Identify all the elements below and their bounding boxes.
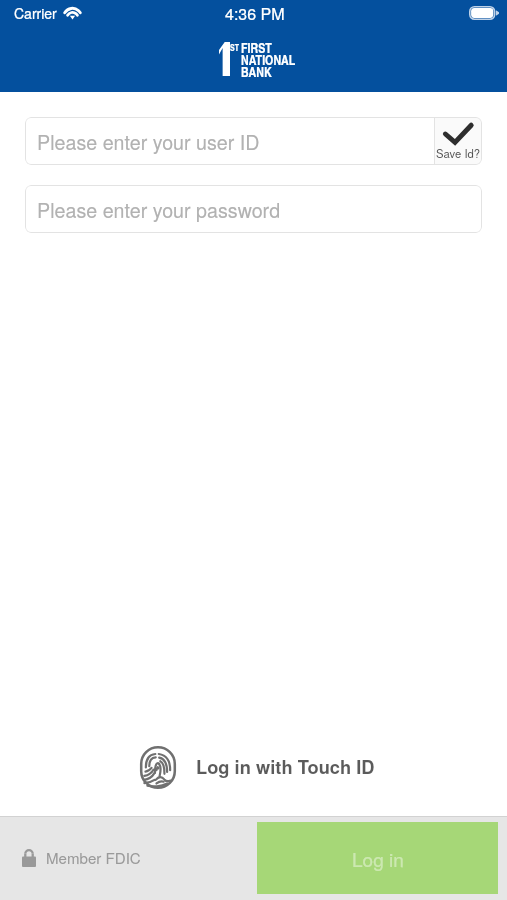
button[interactable]: Log in xyxy=(257,822,498,894)
staticText: Save Id? xyxy=(436,145,481,161)
staticText: Member FDIC xyxy=(46,847,141,869)
button[interactable]: Please enter your user ID xyxy=(25,117,482,165)
button[interactable]: Please enter your password xyxy=(25,185,482,233)
staticText: BANK xyxy=(241,63,272,81)
staticText: NATIONAL xyxy=(241,51,296,69)
staticText: Please enter your password xyxy=(37,195,281,223)
staticText: Log in with Touch ID xyxy=(196,753,375,779)
staticText: 4:36 PM xyxy=(225,2,285,25)
staticText: Please enter your user ID xyxy=(37,127,260,155)
button[interactable]: Save Id xyxy=(434,117,482,165)
button[interactable]: Log in with Touch ID xyxy=(129,739,385,796)
staticText: FIRST xyxy=(241,39,272,57)
button[interactable]: Member FDIC xyxy=(22,847,141,869)
staticText: ST xyxy=(230,42,239,54)
staticText: Log in xyxy=(352,845,404,872)
staticText: Carrier xyxy=(14,3,57,23)
